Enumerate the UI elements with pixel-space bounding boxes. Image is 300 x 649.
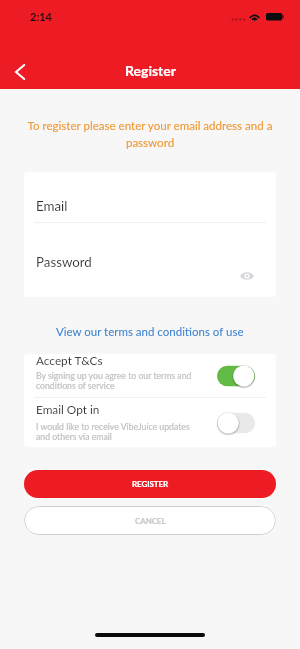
staticText: Accept T&Cs <box>36 354 103 367</box>
staticText: To register please enter your email addr… <box>14 119 286 149</box>
staticText: and others via email <box>36 431 112 441</box>
button[interactable]: Switch on <box>217 365 255 387</box>
button[interactable]: Password <box>24 223 276 297</box>
staticText: REGISTER <box>132 479 168 489</box>
button[interactable]: View our terms and conditions of use <box>56 325 244 339</box>
button[interactable]: Accept T&Cs <box>24 354 276 397</box>
button[interactable]: Back <box>2 54 37 89</box>
staticText: conditions of service <box>36 380 115 390</box>
staticText: Email Opt in <box>36 402 100 416</box>
staticText: 2:14 <box>30 10 52 23</box>
staticText: CANCEL <box>135 516 166 526</box>
button[interactable]: Switch off <box>217 412 255 434</box>
staticText: Email <box>36 198 68 214</box>
staticText: Register <box>125 62 176 79</box>
button[interactable]: Email <box>24 172 276 222</box>
button[interactable]: CANCEL <box>24 506 276 535</box>
staticText: I would like to receive VibeJuice update… <box>36 421 190 431</box>
button[interactable]: Show password <box>239 268 255 284</box>
staticText: By signing up you agree to our terms and <box>36 370 192 380</box>
button[interactable]: Email Opt in <box>24 398 276 447</box>
staticText: Password <box>36 254 92 270</box>
button[interactable]: REGISTER <box>24 470 276 498</box>
